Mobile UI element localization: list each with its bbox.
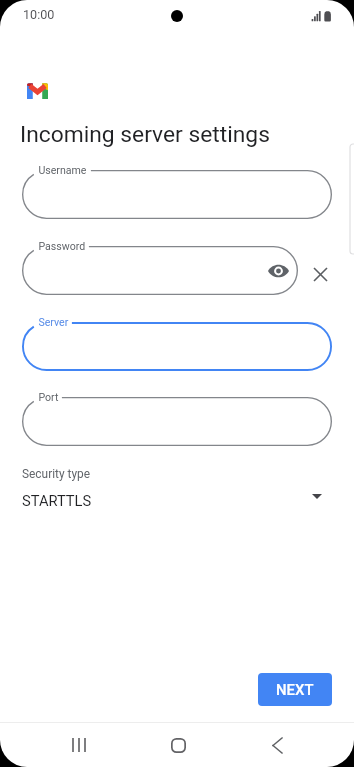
button[interactable]: Home	[156, 723, 200, 767]
button[interactable]	[22, 397, 332, 446]
button[interactable]	[22, 246, 298, 295]
button[interactable]: Show password	[264, 257, 292, 285]
staticText: STARTTLS	[22, 492, 92, 509]
button[interactable]: Security type	[0, 460, 354, 516]
staticText: Incoming server settings	[20, 121, 270, 148]
button[interactable]: NEXT	[258, 673, 332, 706]
button[interactable]	[22, 170, 332, 219]
button[interactable]: Clear	[306, 260, 335, 289]
staticText: 10:00	[23, 7, 55, 22]
button[interactable]: Recent apps	[57, 723, 101, 767]
button[interactable]	[22, 322, 332, 371]
button[interactable]: Back	[255, 723, 299, 767]
staticText: Security type	[22, 467, 91, 481]
staticText: NEXT	[276, 681, 314, 698]
